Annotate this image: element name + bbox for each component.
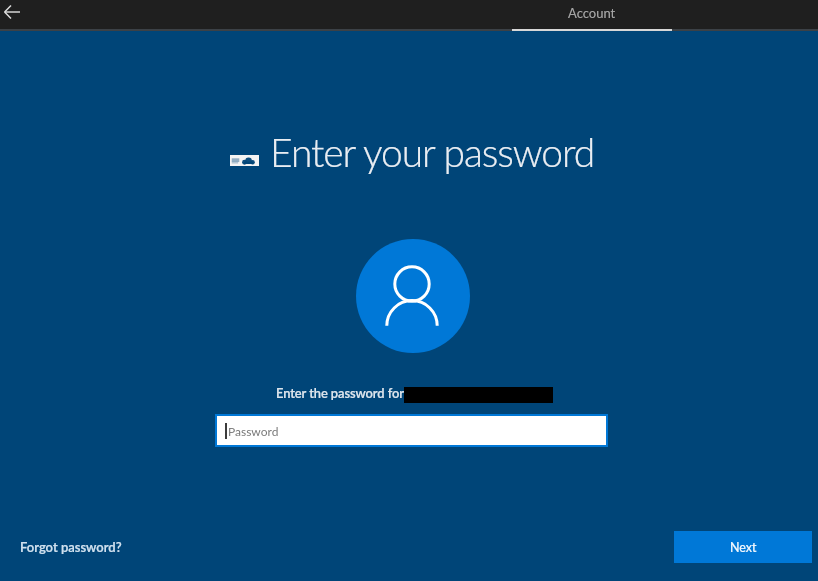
staticText: Enter the password for [276, 385, 404, 400]
button[interactable]: Forgot password? [20, 539, 122, 555]
staticText: Account [568, 5, 616, 21]
staticText: Password [228, 424, 279, 438]
button[interactable]: Back [0, 0, 40, 29]
button[interactable]: Next [674, 531, 812, 563]
staticText: Enter your password [270, 129, 595, 176]
staticText: Forgot password? [20, 539, 122, 555]
button[interactable]: Password [217, 416, 606, 445]
button[interactable]: Account [512, 0, 672, 31]
staticText: Next [730, 540, 757, 555]
